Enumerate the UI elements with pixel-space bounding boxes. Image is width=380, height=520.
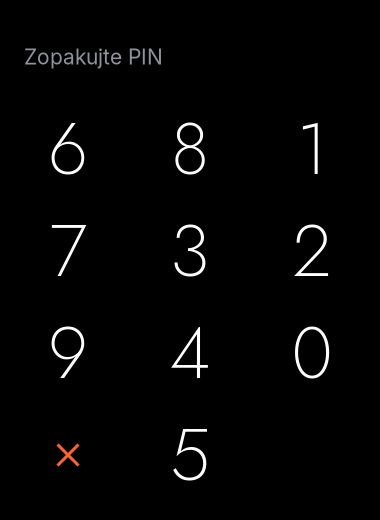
staticText: 6	[48, 97, 88, 201]
button[interactable]: 1	[251, 98, 373, 200]
button[interactable]: Delete	[7, 404, 129, 506]
button[interactable]: 7	[7, 200, 129, 302]
staticText: 5	[170, 403, 210, 507]
button[interactable]: 8	[129, 98, 251, 200]
staticText: 2	[292, 199, 331, 303]
staticText: 4	[169, 301, 210, 405]
staticText: Zopakujte PIN	[24, 44, 163, 69]
staticText: 8	[171, 97, 209, 201]
button[interactable]: 4	[129, 302, 251, 404]
button[interactable]: 6	[7, 98, 129, 200]
staticText: 9	[48, 301, 88, 405]
button[interactable]: 3	[129, 200, 251, 302]
button[interactable]: 9	[7, 302, 129, 404]
button[interactable]: 2	[251, 200, 373, 302]
staticText: 0	[291, 301, 332, 405]
staticText: 1	[296, 97, 327, 201]
button[interactable]: 0	[251, 302, 373, 404]
staticText: 3	[170, 199, 210, 303]
staticText: 7	[49, 199, 86, 303]
button[interactable]: 5	[129, 404, 251, 506]
